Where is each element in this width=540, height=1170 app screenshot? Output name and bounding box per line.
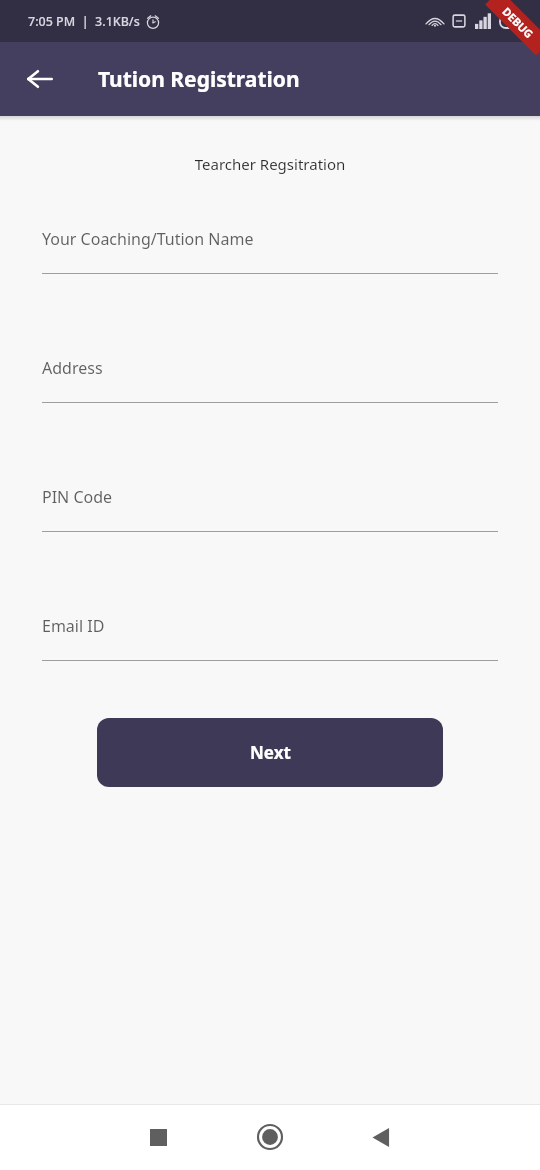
staticText: DEBUG xyxy=(499,4,537,41)
button[interactable]: Your Coaching/Tution Name xyxy=(42,228,498,274)
button[interactable]: Back xyxy=(16,55,64,103)
staticText: PIN Code xyxy=(42,486,113,508)
button[interactable]: PIN Code xyxy=(42,486,498,532)
button[interactable]: Next xyxy=(97,718,443,787)
staticText: Address xyxy=(42,357,103,379)
staticText: Next xyxy=(250,741,291,764)
staticText: Tution Registration xyxy=(98,65,300,94)
button[interactable]: Email ID xyxy=(42,615,498,661)
button[interactable]: Back xyxy=(356,1113,404,1161)
staticText: Email ID xyxy=(42,615,105,637)
button[interactable]: Home xyxy=(246,1113,294,1161)
button[interactable]: Recent apps xyxy=(134,1113,182,1161)
button[interactable]: Address xyxy=(42,357,498,403)
staticText: 7:05 PM | 3.1KB/s xyxy=(28,13,140,30)
staticText: Your Coaching/Tution Name xyxy=(42,228,254,250)
staticText: Tearcher Regsitration xyxy=(0,154,540,174)
